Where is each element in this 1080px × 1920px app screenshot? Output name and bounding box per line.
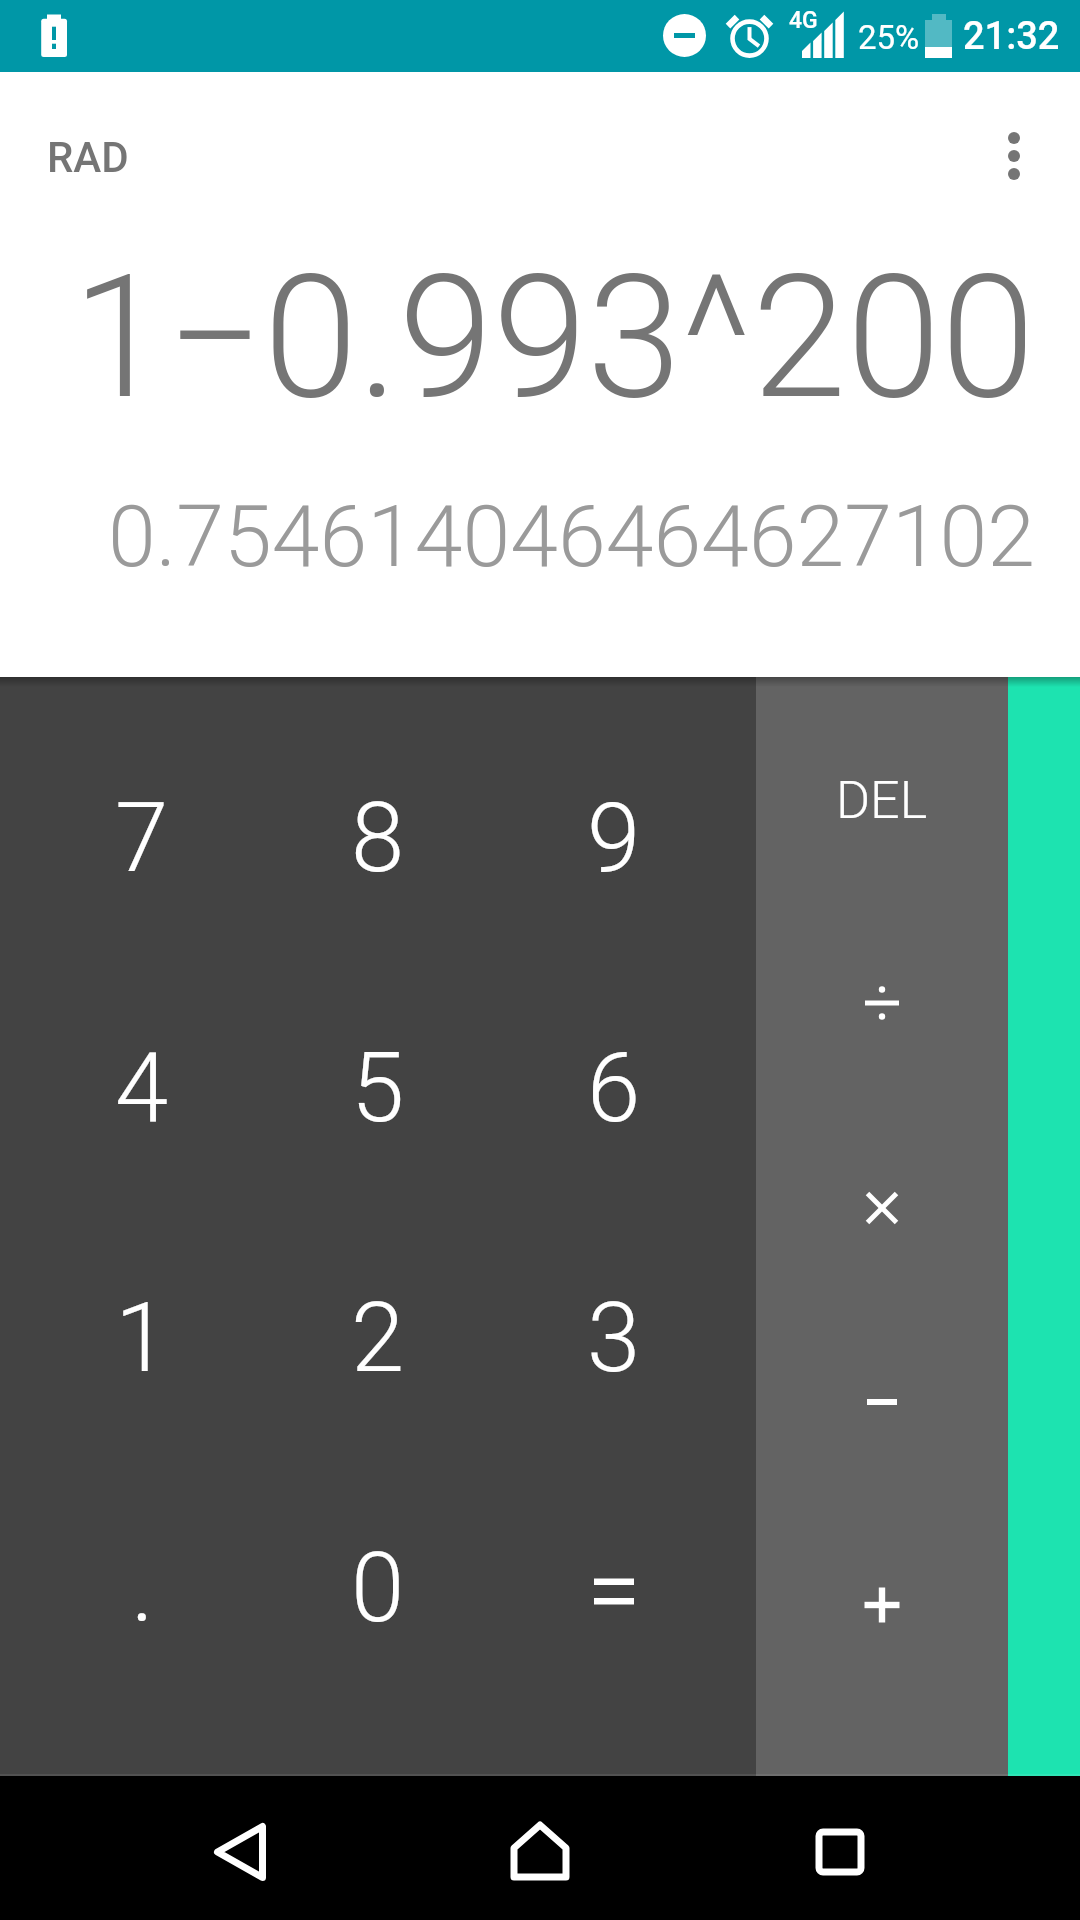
button[interactable]: Back: [0, 1776, 360, 1920]
staticText: 2: [351, 1282, 405, 1395]
button[interactable]: 4: [24, 963, 260, 1213]
button[interactable]: 9: [496, 713, 732, 963]
button[interactable]: 8: [260, 713, 496, 963]
button[interactable]: .: [24, 1463, 260, 1713]
button[interactable]: Home: [360, 1776, 720, 1920]
staticText: 1: [115, 1282, 169, 1395]
button[interactable]: 2: [260, 1213, 496, 1463]
staticText: 3: [587, 1282, 641, 1395]
staticText: 9: [587, 782, 641, 895]
button[interactable]: Divide: [756, 902, 1008, 1103]
staticText: 21:32: [963, 14, 1060, 59]
button[interactable]: Minus: [756, 1301, 1008, 1502]
staticText: 0: [351, 1532, 405, 1645]
button[interactable]: More options: [980, 94, 1048, 202]
button[interactable]: Plus: [756, 1504, 1008, 1705]
button[interactable]: Equals panel: [1008, 677, 1080, 1776]
button[interactable]: Multiply: [756, 1107, 1008, 1308]
button[interactable]: RAD: [24, 108, 144, 186]
staticText: 4G: [789, 7, 818, 34]
staticText: 4: [115, 1032, 169, 1145]
button[interactable]: 5: [260, 963, 496, 1213]
staticText: 5: [351, 1032, 405, 1145]
button[interactable]: 6: [496, 963, 732, 1213]
staticText: 8: [351, 782, 405, 895]
button[interactable]: 7: [24, 713, 260, 963]
staticText: DEL: [836, 770, 928, 831]
button[interactable]: [496, 1463, 732, 1713]
staticText: 0.754614046464627102: [108, 486, 1035, 587]
staticText: 7: [115, 782, 169, 895]
staticText: 6: [587, 1032, 641, 1145]
staticText: RAD: [47, 133, 129, 182]
button[interactable]: 3: [496, 1213, 732, 1463]
staticText: .: [131, 1532, 154, 1645]
button[interactable]: 1: [24, 1213, 260, 1463]
button[interactable]: 0: [260, 1463, 496, 1713]
staticText: 1−0.993^200: [72, 238, 1035, 437]
button[interactable]: Recent apps: [720, 1776, 1080, 1920]
button[interactable]: DEL: [756, 699, 1008, 900]
staticText: 25%: [858, 18, 920, 57]
